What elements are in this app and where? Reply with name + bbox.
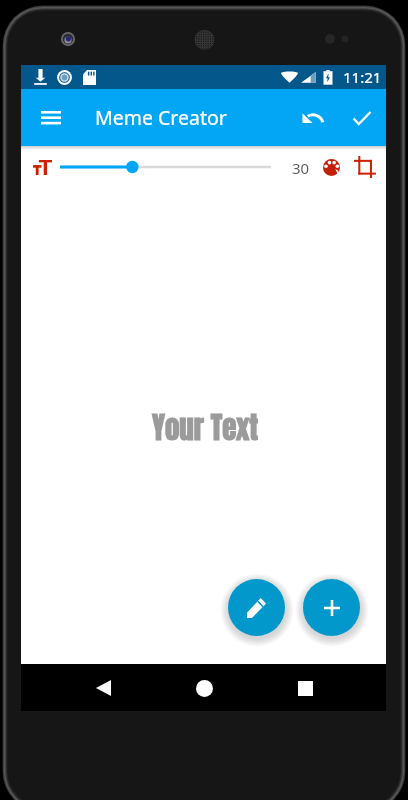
staticText: Your Text xyxy=(152,406,259,450)
button[interactable]: Crop xyxy=(350,152,380,182)
button[interactable]: Font size slider xyxy=(52,154,280,180)
button[interactable]: Back xyxy=(80,665,126,711)
button[interactable]: Recents xyxy=(282,665,328,711)
button[interactable]: Home xyxy=(181,665,227,711)
button[interactable]: Edit text xyxy=(228,579,285,636)
staticText: 11:21 xyxy=(343,67,382,87)
button[interactable]: Text size xyxy=(23,153,62,181)
staticText: 30 xyxy=(292,158,310,178)
button[interactable]: Done xyxy=(339,95,385,141)
staticText: Meme Creator xyxy=(95,104,227,131)
button[interactable]: Undo xyxy=(290,95,336,141)
button[interactable]: Colour xyxy=(316,152,346,182)
button[interactable]: Menu xyxy=(28,95,74,141)
button[interactable]: Add xyxy=(303,579,360,636)
